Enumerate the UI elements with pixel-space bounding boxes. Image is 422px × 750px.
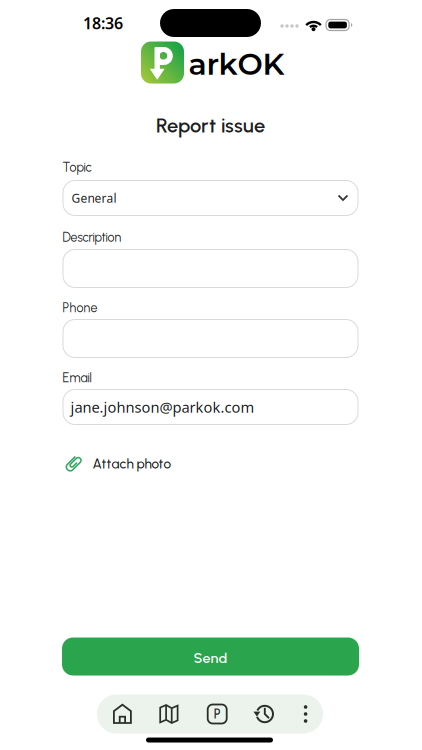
staticText: General: [71, 190, 116, 206]
staticText: Report issue: [156, 113, 265, 137]
staticText: 18:36: [83, 12, 123, 34]
staticText: arkOK: [188, 46, 284, 82]
staticText: P: [214, 706, 221, 721]
button[interactable]: Description: [62, 249, 358, 288]
staticText: Topic: [62, 160, 91, 175]
button[interactable]: Send: [62, 637, 359, 675]
button[interactable]: Map: [149, 694, 189, 733]
button[interactable]: More: [291, 694, 321, 733]
staticText: Send: [193, 649, 227, 666]
staticText: Email: [62, 371, 91, 385]
button[interactable]: Home: [102, 694, 142, 733]
staticText: jane.johnson@parkok.com: [70, 397, 254, 417]
staticText: Description: [62, 230, 121, 245]
button[interactable]: Parking: [197, 694, 237, 733]
button[interactable]: jane.johnson@parkok.com: [62, 389, 358, 425]
button[interactable]: Attach photo: [62, 449, 358, 479]
button[interactable]: Phone: [62, 319, 358, 358]
button[interactable]: History: [245, 694, 285, 733]
button[interactable]: General: [62, 180, 358, 216]
staticText: Attach photo: [92, 456, 171, 472]
staticText: Phone: [62, 301, 97, 315]
